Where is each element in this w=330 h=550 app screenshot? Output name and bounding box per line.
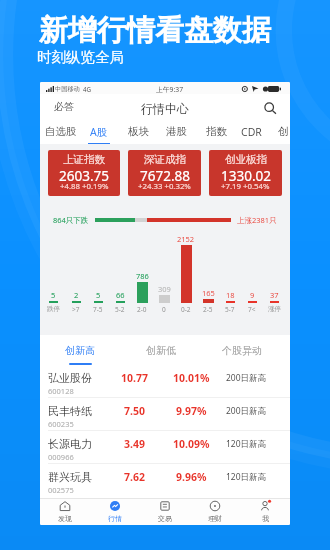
- staticText: 深证成指: [144, 153, 186, 166]
- staticText: +4.88 +0.19%: [60, 181, 109, 192]
- staticText: 1330.02: [221, 167, 271, 185]
- staticText: 18: [226, 290, 235, 300]
- staticText: 4G: [83, 85, 92, 93]
- staticText: 5: [51, 290, 56, 300]
- staticText: 9.97%: [176, 404, 207, 418]
- staticText: 2: [74, 290, 79, 300]
- staticText: 9: [250, 290, 255, 300]
- button[interactable]: 弘业股份: [40, 365, 290, 398]
- staticText: 0-2: [181, 305, 191, 314]
- staticText: 864只下跌: [53, 215, 89, 225]
- staticText: 指数: [206, 125, 227, 138]
- staticText: 10.01%: [173, 371, 210, 385]
- button[interactable]: 群兴玩具: [40, 464, 290, 497]
- staticText: 600235: [48, 419, 74, 429]
- staticText: 5-2: [115, 305, 125, 314]
- staticText: 120日新高: [226, 438, 267, 450]
- button[interactable]: 个股异动: [201, 335, 282, 365]
- button[interactable]: 创新高: [40, 335, 120, 365]
- staticText: 66: [116, 290, 125, 300]
- staticText: 5-7: [225, 305, 235, 314]
- button[interactable]: 行情: [90, 498, 140, 525]
- staticText: 5: [96, 290, 101, 300]
- staticText: 上证指数: [63, 153, 105, 166]
- staticText: 行情中心: [141, 101, 189, 116]
- staticText: 创: [278, 125, 289, 138]
- button[interactable]: 民丰特纸: [40, 398, 290, 431]
- button[interactable]: 理财: [190, 498, 240, 525]
- staticText: 个股异动: [222, 344, 262, 357]
- staticText: CDR: [241, 125, 262, 139]
- button[interactable]: A股: [80, 118, 118, 144]
- button[interactable]: 上证指数: [48, 150, 120, 196]
- staticText: 165: [202, 288, 215, 298]
- staticText: 必答: [54, 100, 74, 113]
- staticText: 10.77: [121, 371, 148, 385]
- staticText: 长源电力: [48, 437, 92, 451]
- button[interactable]: 创新低: [120, 335, 201, 365]
- staticText: 7-5: [93, 305, 103, 314]
- staticText: 7672.88: [140, 167, 190, 185]
- staticText: >7: [72, 305, 80, 314]
- staticText: 120日新高: [226, 471, 267, 483]
- staticText: 7.62: [124, 470, 145, 484]
- staticText: 发现: [58, 514, 72, 523]
- staticText: 中国移动: [55, 85, 80, 93]
- staticText: 000966: [48, 452, 74, 462]
- staticText: 2-0: [137, 305, 147, 314]
- staticText: 创业板指: [225, 153, 267, 166]
- staticText: 上涨2381只: [237, 215, 277, 225]
- button[interactable]: 交易: [140, 498, 190, 525]
- button[interactable]: 深证成指: [128, 150, 201, 196]
- staticText: 群兴玩具: [48, 470, 92, 484]
- staticText: 上午9:37: [156, 85, 184, 94]
- button[interactable]: Search: [260, 98, 280, 118]
- staticText: 9.96%: [176, 470, 207, 484]
- button[interactable]: 发现: [40, 498, 90, 525]
- staticText: 3.49: [124, 437, 145, 451]
- staticText: 创新低: [146, 344, 176, 357]
- staticText: 37: [270, 290, 279, 300]
- staticText: 理财: [208, 514, 222, 523]
- staticText: +7.19 +0.54%: [221, 181, 270, 192]
- staticText: 我: [262, 514, 269, 523]
- staticText: 创新高: [65, 344, 95, 357]
- button[interactable]: 板块: [119, 118, 157, 144]
- staticText: 时刻纵览全局: [37, 48, 124, 66]
- staticText: +24.33 +0.32%: [138, 181, 191, 192]
- staticText: 自选股: [45, 125, 77, 138]
- button[interactable]: 港股: [157, 118, 195, 144]
- staticText: 2152: [177, 234, 195, 244]
- staticText: 600128: [48, 386, 74, 396]
- staticText: 弘业股份: [48, 371, 92, 385]
- staticText: 新增行情看盘数据: [39, 12, 271, 49]
- staticText: 民丰特纸: [48, 404, 92, 418]
- staticText: 2603.75: [59, 167, 109, 185]
- button[interactable]: 必答: [49, 96, 79, 117]
- staticText: 港股: [166, 125, 187, 138]
- button[interactable]: 我: [240, 498, 290, 525]
- button[interactable]: 创业板指: [209, 150, 282, 196]
- staticText: 0: [162, 305, 166, 314]
- staticText: 涨停: [268, 305, 281, 313]
- staticText: 2-5: [203, 305, 213, 314]
- staticText: A股: [90, 125, 108, 139]
- staticText: 10.09%: [173, 437, 210, 451]
- staticText: 309: [158, 284, 171, 294]
- staticText: 行情: [108, 514, 122, 523]
- staticText: 200日新高: [226, 372, 267, 384]
- button[interactable]: 长源电力: [40, 431, 290, 464]
- staticText: 200日新高: [226, 405, 267, 417]
- staticText: 板块: [128, 125, 149, 138]
- staticText: 7<: [248, 305, 256, 314]
- staticText: 7.50: [124, 404, 145, 418]
- button[interactable]: 指数: [197, 118, 235, 144]
- button[interactable]: 自选股: [42, 118, 80, 144]
- staticText: 交易: [158, 514, 172, 523]
- button[interactable]: 创: [264, 118, 290, 144]
- staticText: 786: [136, 271, 149, 281]
- button[interactable]: CDR: [232, 118, 270, 144]
- staticText: 002575: [48, 485, 74, 495]
- staticText: 跌停: [47, 305, 60, 313]
